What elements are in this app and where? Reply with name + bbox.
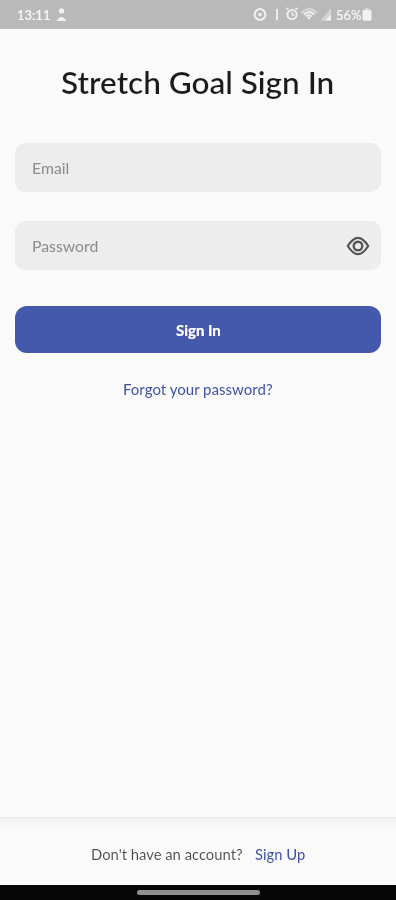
- staticText: 56%: [336, 7, 362, 23]
- staticText: Don't have an account?: [91, 845, 243, 863]
- button[interactable]: Sign In: [15, 306, 381, 353]
- button[interactable]: Email: [15, 143, 381, 192]
- staticText: Password: [32, 236, 99, 255]
- staticText: Email: [32, 158, 70, 177]
- button[interactable]: Sign Up: [255, 845, 306, 863]
- button[interactable]: Forgot your password?: [123, 380, 273, 398]
- staticText: Sign In: [176, 321, 221, 339]
- staticText: Stretch Goal Sign In: [61, 63, 335, 101]
- button[interactable]: Password: [15, 221, 381, 270]
- staticText: 13:11: [17, 7, 51, 23]
